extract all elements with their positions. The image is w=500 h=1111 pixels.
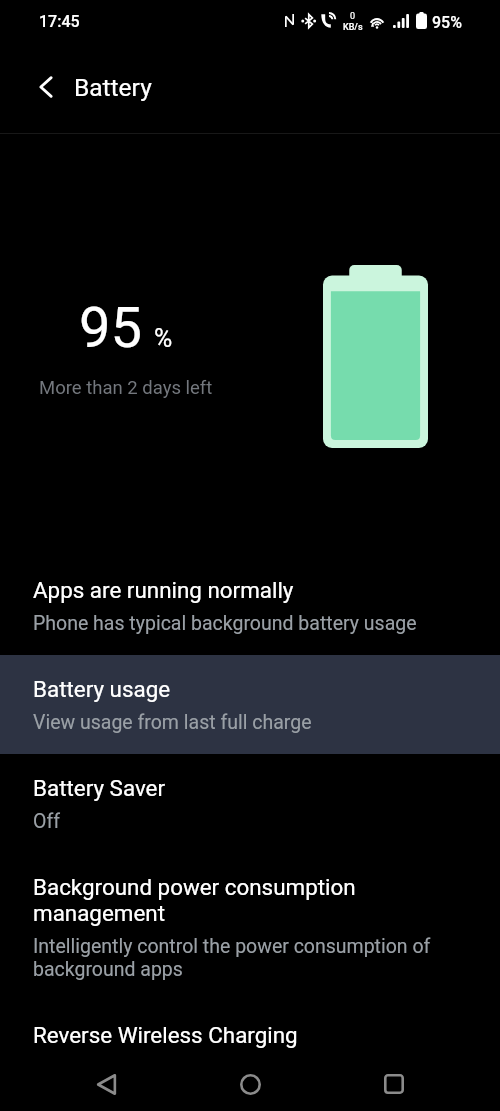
button[interactable]: Back: [22, 63, 70, 111]
button[interactable]: Battery usage: [0, 655, 500, 754]
staticText: 17:45: [39, 12, 80, 31]
button[interactable]: Reverse Wireless Charging: [0, 1001, 500, 1068]
staticText: 95%: [432, 13, 462, 32]
button[interactable]: Battery Saver: [0, 754, 500, 853]
staticText: KB/s: [343, 22, 363, 33]
button[interactable]: Background power consumption management: [0, 853, 500, 1001]
staticText: More than 2 days left: [39, 377, 213, 399]
button[interactable]: Home: [220, 1056, 280, 1111]
staticText: Off: [33, 810, 60, 833]
button[interactable]: Back: [76, 1056, 136, 1111]
button[interactable]: Apps are running normally: [0, 556, 500, 655]
staticText: Intelligently control the power consumpt…: [33, 935, 453, 981]
staticText: Battery Saver: [33, 775, 166, 801]
staticText: Apps are running normally: [33, 577, 294, 603]
staticText: 95: [79, 295, 142, 361]
staticText: Background power consumption management: [33, 874, 453, 926]
staticText: Battery: [74, 73, 152, 102]
staticText: %: [154, 324, 173, 353]
staticText: Battery usage: [33, 676, 171, 702]
staticText: Phone has typical background battery usa…: [33, 612, 417, 635]
staticText: Reverse Wireless Charging: [33, 1022, 298, 1048]
staticText: 0: [350, 11, 356, 22]
button[interactable]: Recents: [364, 1056, 424, 1111]
staticText: View usage from last full charge: [33, 711, 312, 734]
